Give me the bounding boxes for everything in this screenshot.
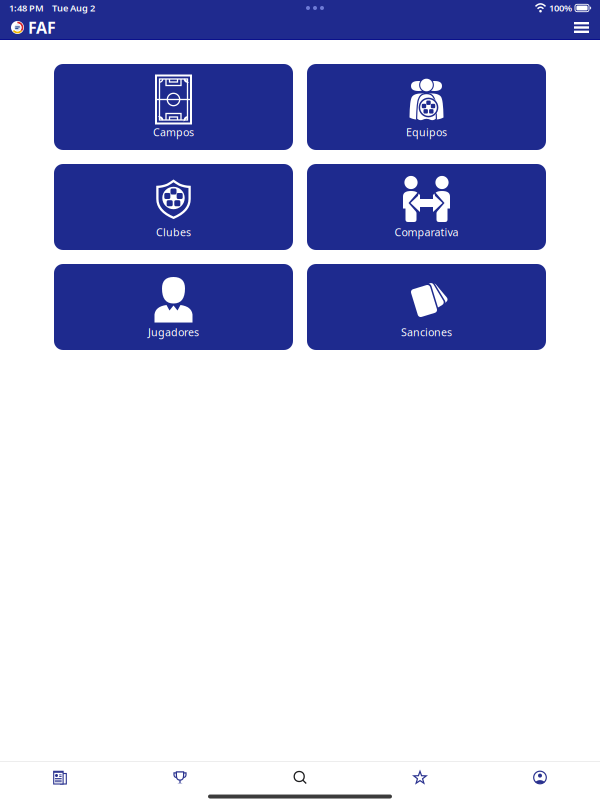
button[interactable]: FAF	[11, 17, 56, 38]
button[interactable]: Comparativa	[307, 164, 546, 250]
button[interactable]: Campos	[54, 64, 293, 150]
button[interactable]: Menu	[574, 22, 589, 33]
staticText: Equipos	[406, 125, 447, 139]
button[interactable]: Favourites	[360, 762, 480, 792]
staticText: Clubes	[156, 225, 191, 239]
staticText: Campos	[153, 125, 194, 139]
button[interactable]: News	[0, 762, 120, 792]
staticText: 1:48 PM	[9, 2, 44, 14]
staticText: FAF	[28, 17, 56, 38]
staticText: Sanciones	[401, 325, 452, 339]
button[interactable]: Jugadores	[54, 264, 293, 350]
staticText: 100%	[549, 2, 572, 14]
button[interactable]: Equipos	[307, 64, 546, 150]
button[interactable]: Sanciones	[307, 264, 546, 350]
button[interactable]: Competitions	[120, 762, 240, 792]
staticText: Tue Aug 2	[52, 2, 95, 14]
staticText: Comparativa	[394, 225, 458, 239]
button[interactable]: Profile	[480, 762, 600, 792]
staticText: Jugadores	[148, 325, 199, 339]
button[interactable]: Search	[240, 762, 360, 792]
button[interactable]: Clubes	[54, 164, 293, 250]
